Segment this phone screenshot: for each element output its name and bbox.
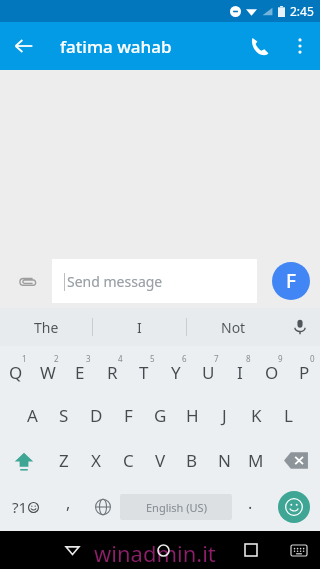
staticText: Y xyxy=(171,361,181,384)
staticText: H xyxy=(186,404,199,427)
button[interactable]: Symbols xyxy=(0,483,50,531)
button[interactable]: V xyxy=(144,438,176,483)
button[interactable]: Attach xyxy=(8,263,44,299)
staticText: I xyxy=(237,361,243,384)
staticText: fatima wahab xyxy=(60,35,236,58)
button[interactable]: Voice input xyxy=(280,308,320,346)
staticText: 3 xyxy=(86,353,91,364)
button[interactable]: Q xyxy=(0,346,32,393)
staticText: F xyxy=(286,268,297,294)
button[interactable]: English (US) xyxy=(120,494,232,520)
staticText: J xyxy=(222,404,227,427)
button[interactable]: M xyxy=(240,438,272,483)
button[interactable]: U xyxy=(192,346,224,393)
staticText: ?1 xyxy=(12,497,28,517)
staticText: 7 xyxy=(214,353,219,364)
staticText: The xyxy=(34,318,59,337)
button[interactable]: B xyxy=(176,438,208,483)
staticText: F xyxy=(124,404,133,427)
button[interactable]: , xyxy=(50,483,86,531)
button[interactable]: F xyxy=(112,393,144,438)
button[interactable]: Shift xyxy=(0,438,48,483)
staticText: Z xyxy=(59,449,69,472)
button[interactable]: Back xyxy=(0,22,48,70)
staticText: , xyxy=(66,492,71,514)
button[interactable]: Emoji xyxy=(268,483,320,531)
button[interactable]: D xyxy=(80,393,112,438)
button[interactable]: J xyxy=(208,393,240,438)
button[interactable]: F xyxy=(272,262,310,300)
button[interactable]: Back xyxy=(55,533,89,567)
button[interactable]: Change language xyxy=(86,483,120,531)
staticText: X xyxy=(91,449,101,472)
staticText: S xyxy=(59,404,69,427)
button[interactable]: C xyxy=(112,438,144,483)
staticText: 5 xyxy=(150,353,155,364)
staticText: 8 xyxy=(246,353,251,364)
staticText: M xyxy=(248,449,264,472)
staticText: English (US) xyxy=(146,500,207,515)
button[interactable]: K xyxy=(240,393,272,438)
staticText: Not xyxy=(221,318,246,337)
button[interactable]: G xyxy=(144,393,176,438)
button[interactable]: Backspace xyxy=(272,438,320,483)
button[interactable]: L xyxy=(272,393,304,438)
staticText: O xyxy=(265,361,279,384)
staticText: 4 xyxy=(118,353,123,364)
button[interactable]: Home xyxy=(146,533,180,567)
staticText: L xyxy=(284,404,293,427)
button[interactable]: S xyxy=(48,393,80,438)
button[interactable]: W xyxy=(32,346,64,393)
button[interactable]: Z xyxy=(48,438,80,483)
staticText: E xyxy=(75,361,85,384)
staticText: T xyxy=(139,361,149,384)
button[interactable]: H xyxy=(176,393,208,438)
button[interactable]: Not xyxy=(187,308,280,346)
staticText: 9 xyxy=(278,353,283,364)
staticText: winadmin.it xyxy=(94,538,216,568)
button[interactable]: The xyxy=(0,308,92,346)
button[interactable]: Send message xyxy=(52,259,257,303)
button[interactable]: P xyxy=(288,346,320,393)
staticText: 6 xyxy=(182,353,187,364)
button[interactable]: Hide keyboard xyxy=(284,535,314,565)
button[interactable]: E xyxy=(64,346,96,393)
staticText: C xyxy=(123,449,134,472)
button[interactable]: R xyxy=(96,346,128,393)
button[interactable]: Call xyxy=(236,22,284,70)
button[interactable]: I xyxy=(224,346,256,393)
staticText: V xyxy=(155,449,166,472)
staticText: A xyxy=(27,404,38,427)
staticText: Send message xyxy=(67,272,163,291)
staticText: . xyxy=(248,492,253,514)
button[interactable]: Y xyxy=(160,346,192,393)
button[interactable]: Recents xyxy=(234,533,268,567)
staticText: G xyxy=(154,404,167,427)
staticText: 0 xyxy=(310,353,315,364)
staticText: P xyxy=(299,361,310,384)
staticText: K xyxy=(251,404,262,427)
staticText: 2 xyxy=(54,353,59,364)
button[interactable]: A xyxy=(16,393,48,438)
staticText: 1 xyxy=(22,353,27,364)
staticText: R xyxy=(107,361,118,384)
button[interactable]: N xyxy=(208,438,240,483)
button[interactable]: More options xyxy=(284,22,316,70)
staticText: N xyxy=(218,449,231,472)
staticText: B xyxy=(186,449,198,472)
button[interactable]: O xyxy=(256,346,288,393)
staticText: U xyxy=(202,361,215,384)
staticText: D xyxy=(90,404,103,427)
button[interactable]: . xyxy=(232,483,268,531)
button[interactable]: I xyxy=(93,308,186,346)
button[interactable]: T xyxy=(128,346,160,393)
staticText: I xyxy=(137,318,142,337)
staticText: 2:45 xyxy=(290,3,314,19)
staticText: W xyxy=(40,361,56,384)
staticText: Q xyxy=(9,361,23,384)
button[interactable]: X xyxy=(80,438,112,483)
